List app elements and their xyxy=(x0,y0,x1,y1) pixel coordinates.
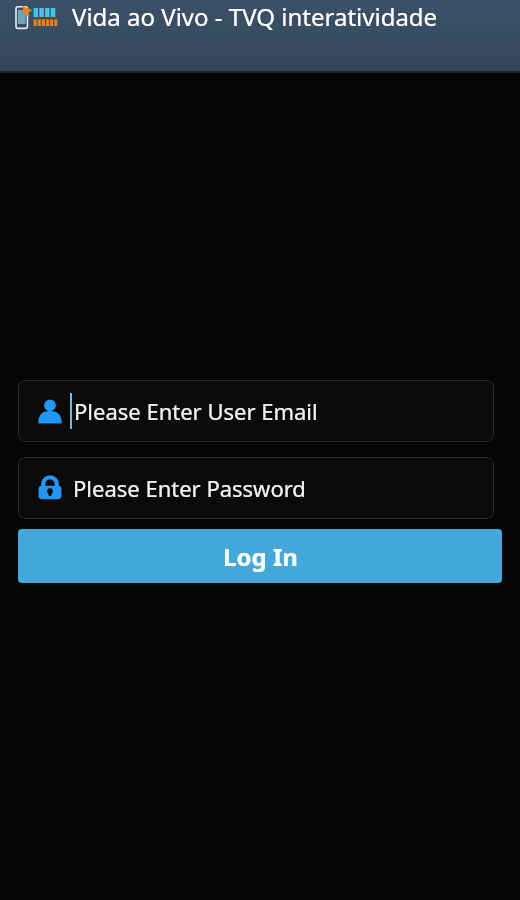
other: User xyxy=(36,397,64,425)
button[interactable]: Password xyxy=(18,457,494,519)
other: Password xyxy=(36,474,64,502)
button[interactable]: Log In xyxy=(18,529,502,583)
staticText: Please Enter Password xyxy=(73,473,306,503)
staticText: Vida ao Vivo - TVQ interatividade xyxy=(72,0,438,33)
staticText: Please Enter User Email xyxy=(74,396,318,426)
button[interactable]: User xyxy=(18,380,494,442)
staticText: Log In xyxy=(223,540,298,573)
